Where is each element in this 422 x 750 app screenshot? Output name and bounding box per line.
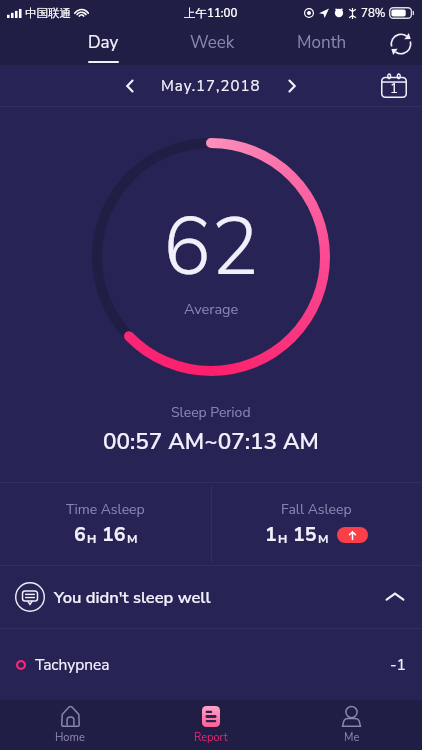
staticText: H bbox=[87, 531, 97, 547]
button[interactable]: Time Asleep bbox=[0, 483, 211, 565]
staticText: Sleep Period bbox=[171, 403, 251, 422]
staticText: Tachypnea bbox=[35, 654, 110, 675]
button[interactable]: Refresh bbox=[376, 25, 422, 65]
staticText: 62 bbox=[163, 193, 259, 302]
button[interactable]: Fall Asleep bbox=[211, 483, 422, 565]
staticText: Day bbox=[88, 31, 119, 54]
staticText: Report bbox=[194, 730, 228, 745]
staticText: 00:57 AM~07:13 AM bbox=[103, 426, 319, 457]
staticText: Me bbox=[344, 730, 360, 745]
staticText: 中国联通 bbox=[25, 6, 71, 20]
button[interactable]: You didn't sleep well bbox=[0, 566, 422, 628]
button[interactable]: Me bbox=[281, 700, 422, 750]
button[interactable]: Home bbox=[0, 700, 140, 750]
button[interactable]: Next day bbox=[273, 67, 311, 105]
staticText: 1 bbox=[265, 521, 277, 548]
button[interactable]: Tachypnea bbox=[0, 629, 422, 700]
staticText: Week bbox=[190, 31, 235, 54]
staticText: You didn't sleep well bbox=[54, 586, 211, 609]
staticText: M bbox=[127, 531, 138, 547]
button[interactable]: Pick date bbox=[377, 69, 411, 103]
button[interactable]: Report bbox=[140, 700, 281, 750]
staticText: H bbox=[278, 531, 288, 547]
staticText: Time Asleep bbox=[66, 500, 145, 519]
button[interactable]: Previous day bbox=[111, 67, 149, 105]
staticText: Fall Asleep bbox=[281, 500, 352, 519]
staticText: 16 bbox=[102, 521, 126, 548]
staticText: May.17,2018 bbox=[161, 76, 261, 96]
staticText: Home bbox=[55, 730, 85, 745]
button[interactable]: Month bbox=[267, 25, 376, 65]
staticText: 78% bbox=[361, 5, 386, 21]
button[interactable]: Week bbox=[158, 25, 267, 65]
staticText: 15 bbox=[293, 521, 317, 548]
button[interactable]: Day bbox=[49, 25, 158, 65]
staticText: Average bbox=[184, 299, 239, 319]
staticText: 上午11:00 bbox=[184, 5, 238, 21]
staticText: 1 bbox=[390, 79, 399, 97]
staticText: -1 bbox=[390, 654, 406, 675]
staticText: 6 bbox=[74, 521, 86, 548]
staticText: Month bbox=[297, 31, 347, 54]
staticText: M bbox=[318, 531, 329, 547]
